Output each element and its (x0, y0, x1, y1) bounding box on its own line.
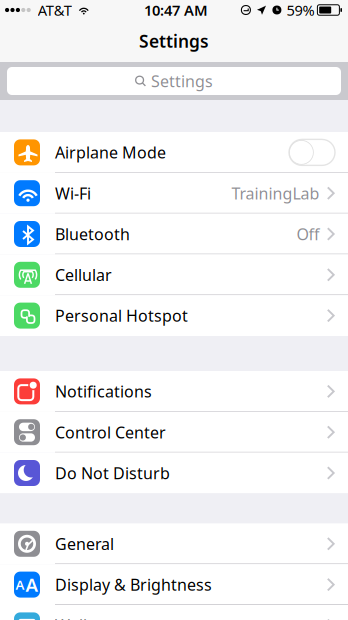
staticText: Airplane Mode (55, 142, 166, 163)
staticText: Notifications (55, 381, 152, 402)
button[interactable]: Airplane Mode (0, 132, 348, 173)
button[interactable]: Wi-Fi (0, 173, 348, 214)
button[interactable]: Bluetooth (0, 214, 348, 254)
staticText: Cellular (55, 264, 112, 285)
staticText: Settings (151, 70, 213, 92)
staticText: A (25, 572, 38, 597)
staticText: 10:47 AM (144, 0, 208, 20)
button[interactable]: General (0, 523, 348, 564)
staticText: Settings (139, 29, 209, 52)
staticText: TrainingLab (231, 183, 319, 204)
staticText: Off (296, 223, 319, 245)
button[interactable]: Do Not Disturb (0, 453, 348, 493)
staticText: Wallpaper (55, 615, 132, 620)
staticText: A (15, 576, 24, 593)
button[interactable]: Wallpaper (0, 605, 348, 620)
button[interactable]: Control Center (0, 412, 348, 453)
staticText: Wi-Fi (55, 183, 91, 204)
staticText: Do Not Disturb (55, 462, 170, 484)
staticText: Display & Brightness (55, 574, 212, 595)
staticText: Bluetooth (55, 223, 130, 245)
button[interactable]: Cellular (0, 254, 348, 295)
staticText: Control Center (55, 422, 166, 443)
button[interactable]: A (0, 564, 348, 605)
staticText: General (55, 533, 114, 554)
staticText: Personal Hotspot (55, 305, 188, 326)
button[interactable]: Notifications (0, 371, 348, 412)
button[interactable]: Personal Hotspot (0, 295, 348, 336)
staticText: 59% (286, 0, 314, 20)
staticText: AT&T (38, 0, 72, 20)
